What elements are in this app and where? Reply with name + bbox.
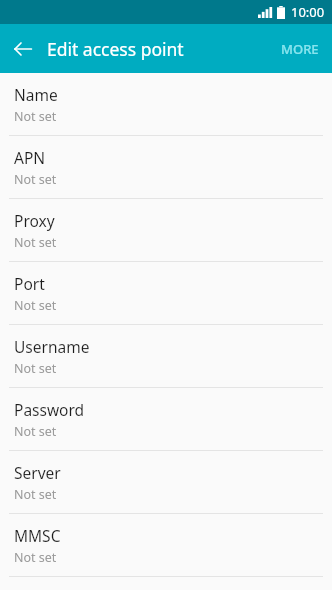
button[interactable]: MORE <box>271 31 329 67</box>
staticText: Not set <box>14 549 57 566</box>
staticText: Not set <box>14 234 57 251</box>
staticText: Server <box>14 462 61 483</box>
staticText: MORE <box>281 40 319 58</box>
staticText: Proxy <box>14 210 55 231</box>
button[interactable]: APN <box>0 136 332 199</box>
staticText: Not set <box>14 108 57 125</box>
staticText: 10:00 <box>291 3 325 21</box>
staticText: Not set <box>14 171 57 188</box>
staticText: Name <box>14 84 58 105</box>
button[interactable]: Username <box>0 325 332 388</box>
staticText: Not set <box>14 486 57 503</box>
staticText: Not set <box>14 360 57 377</box>
button[interactable]: Proxy <box>0 199 332 262</box>
staticText: Password <box>14 399 85 420</box>
staticText: Edit access point <box>47 37 184 61</box>
staticText: Not set <box>14 423 57 440</box>
staticText: Port <box>14 273 45 294</box>
button[interactable]: Port <box>0 262 332 325</box>
staticText: APN <box>14 147 46 168</box>
button[interactable]: MMSC <box>0 514 332 577</box>
button[interactable]: Name <box>0 73 332 136</box>
staticText: MMSC <box>14 525 61 546</box>
button[interactable]: Password <box>0 388 332 451</box>
staticText: Not set <box>14 297 57 314</box>
staticText: Username <box>14 336 90 357</box>
button[interactable]: Server <box>0 451 332 514</box>
button[interactable]: Navigate up <box>5 31 41 67</box>
